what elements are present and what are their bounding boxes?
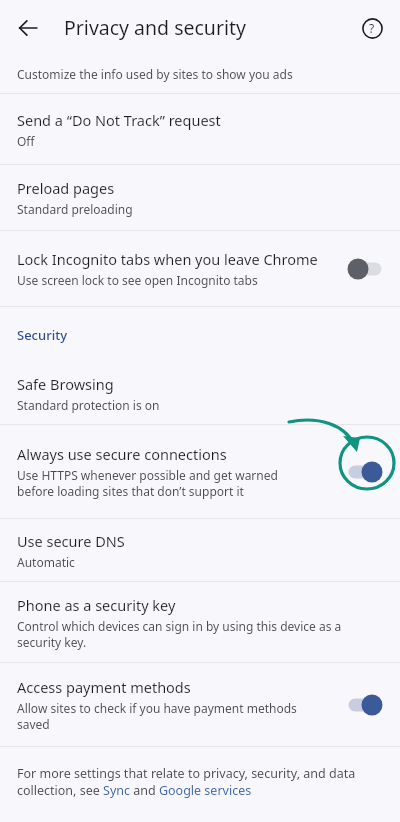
staticText: Automatic [17,554,75,570]
staticText: Off [17,133,35,149]
staticText: Access payment methods [17,677,191,697]
button[interactable]: Always use secure connections [0,425,400,518]
button[interactable]: Lock Incognito tabs when you leave Chrom… [0,231,400,306]
staticText: Security [17,326,67,344]
button[interactable]: Safe Browsing [0,362,400,424]
staticText: Allow sites to check if you have payment… [17,700,297,732]
button[interactable]: Preload pages [0,165,400,230]
staticText: Privacy and security [64,14,246,41]
staticText: Send a “Do Not Track” request [17,110,221,130]
staticText: Standard preloading [17,201,133,217]
staticText: Safe Browsing [17,374,114,394]
staticText: Use HTTPS whenever possible and get warn… [17,467,278,499]
button[interactable]: Customize the info used by sites to show… [0,55,400,93]
button[interactable]: Access payment methods [0,663,400,746]
button[interactable]: Use secure DNS [0,519,400,581]
staticText: Always use secure connections [17,444,227,464]
staticText: ? [369,20,375,36]
staticText: Phone as a security key [17,595,176,615]
button[interactable]: Help [352,8,392,48]
button[interactable]: Back [6,6,50,50]
staticText: Use screen lock to see open Incognito ta… [17,272,258,288]
staticText: Use secure DNS [17,531,125,551]
button[interactable]: Send a “Do Not Track” request [0,94,400,164]
staticText: Lock Incognito tabs when you leave Chrom… [17,249,318,269]
staticText: For more settings that relate to privacy… [17,765,356,799]
staticText: Standard protection is on [17,397,160,413]
staticText: Customize the info used by sites to show… [17,66,293,82]
staticText: Preload pages [17,178,115,198]
button[interactable]: Phone as a security key [0,582,400,662]
staticText: Control which devices can sign in by usi… [17,618,342,650]
button[interactable]: For more settings that relate to privacy… [0,747,400,822]
